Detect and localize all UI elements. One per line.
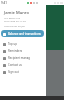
staticText: Acc 88001123 [4, 16, 21, 19]
staticText: Sort code 20-11-55 [4, 19, 26, 22]
staticText: Top up [8, 42, 17, 46]
staticText: Recipient manag [8, 56, 31, 60]
staticText: Last top up 28 Jan [4, 24, 25, 27]
staticText: 9:41 [1, 1, 7, 5]
button[interactable]: Top up [1, 40, 44, 47]
staticText: Sign out [8, 70, 19, 74]
staticText: Contact us [8, 63, 22, 67]
staticText: Jamie Munro [4, 10, 29, 16]
staticText: Reminders [8, 49, 23, 53]
staticText: Balance and transactions [8, 32, 41, 36]
button[interactable]: Contact us [1, 61, 44, 68]
button[interactable]: Recipient manag [1, 54, 44, 61]
button[interactable]: Sign out [1, 68, 44, 75]
button[interactable]: Balance and transactions [1, 30, 44, 37]
button[interactable]: Reminders [1, 47, 44, 54]
